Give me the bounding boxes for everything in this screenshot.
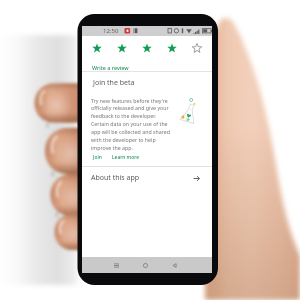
staticText: Write a review	[92, 64, 129, 71]
button[interactable]: Join	[92, 154, 103, 161]
button[interactable]: Rate 1 stars	[84, 37, 109, 58]
button[interactable]: Learn more	[111, 154, 141, 161]
button[interactable]: Rate 5 stars	[184, 37, 209, 58]
staticText: Learn more	[112, 154, 140, 161]
button[interactable]: Rate 4 stars	[159, 37, 184, 58]
button[interactable]: Back	[163, 257, 185, 273]
button[interactable]: Rate 2 stars	[109, 37, 134, 58]
button[interactable]: Recent apps	[105, 257, 127, 273]
staticText: Try new features before they're official…	[91, 97, 170, 152]
button[interactable]: Rate 3 stars	[134, 37, 159, 58]
button[interactable]: About this app	[82, 167, 212, 189]
staticText: About this app	[91, 173, 140, 183]
button[interactable]: Home	[134, 257, 156, 273]
staticText: Join	[93, 154, 102, 161]
staticText: Join the beta	[93, 78, 135, 88]
staticText: 12:50	[103, 27, 119, 35]
button[interactable]: Write a review	[82, 61, 212, 74]
